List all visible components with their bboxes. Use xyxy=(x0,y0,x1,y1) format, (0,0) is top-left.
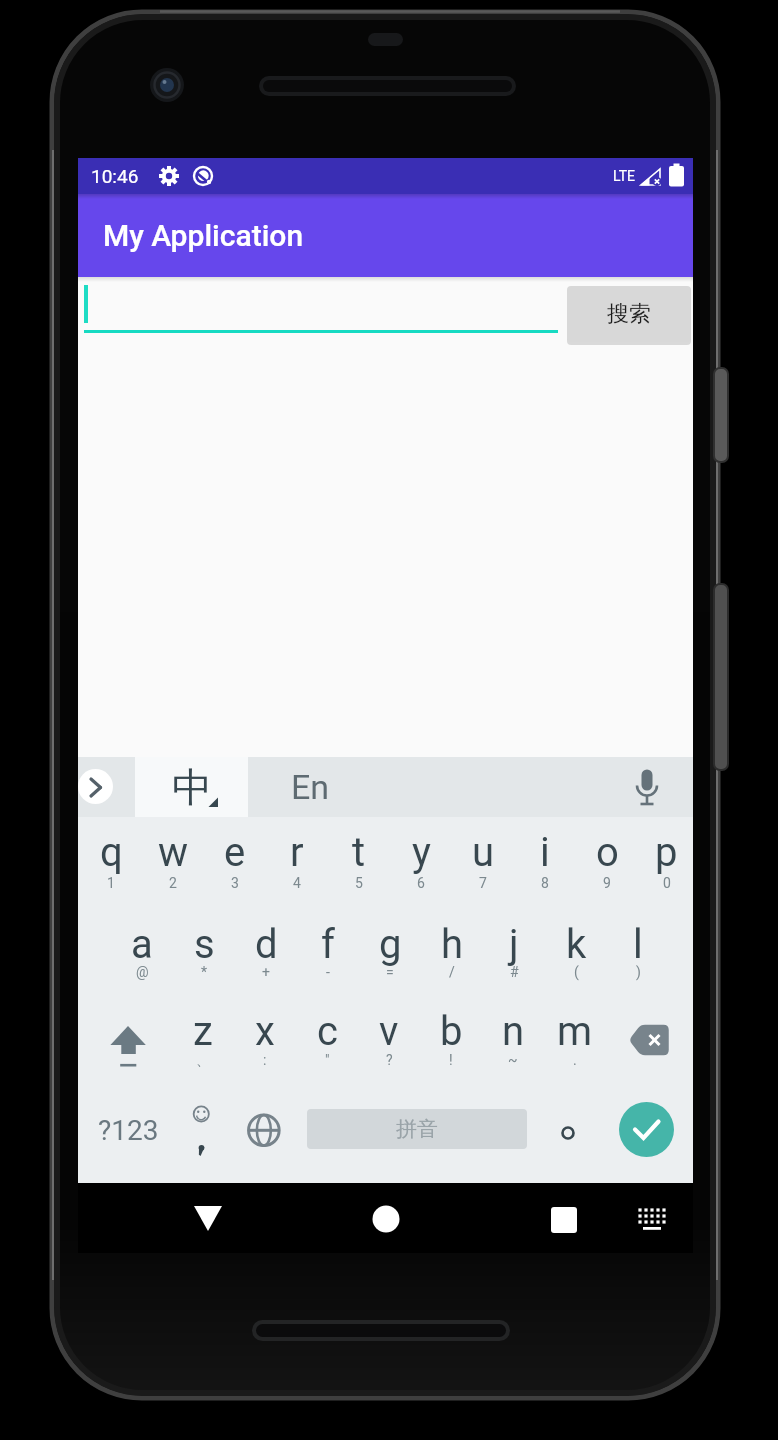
button[interactable]: d xyxy=(235,909,297,1001)
button[interactable]: z xyxy=(172,1000,234,1092)
button[interactable] xyxy=(234,1092,296,1184)
staticText: 6 xyxy=(417,875,425,891)
button[interactable] xyxy=(606,1000,695,1092)
staticText: ~ xyxy=(508,1052,518,1068)
button[interactable]: i xyxy=(514,817,576,909)
staticText: h xyxy=(441,921,464,968)
staticText: r xyxy=(290,829,304,876)
staticText: z xyxy=(193,1008,213,1055)
staticText: n xyxy=(502,1008,525,1055)
button[interactable]: f xyxy=(297,909,359,1001)
button[interactable]: x xyxy=(234,1000,296,1092)
staticText: # xyxy=(510,964,519,980)
staticText: 、 xyxy=(196,1052,210,1070)
button[interactable]: 中 xyxy=(135,757,248,817)
button[interactable]: j xyxy=(483,909,545,1001)
button[interactable]: q xyxy=(80,817,142,909)
button[interactable] xyxy=(633,766,661,810)
staticText: ! xyxy=(449,1052,453,1068)
button[interactable]: k xyxy=(545,909,607,1001)
staticText: @ xyxy=(136,964,149,980)
button[interactable]: p xyxy=(638,817,695,909)
staticText: s xyxy=(194,921,215,968)
button[interactable]: h xyxy=(421,909,483,1001)
button[interactable]: e xyxy=(204,817,266,909)
staticText: 0 xyxy=(663,875,671,891)
staticText: En xyxy=(291,767,330,807)
button[interactable] xyxy=(637,1207,667,1233)
staticText: o xyxy=(596,829,619,876)
staticText: 5 xyxy=(355,875,363,891)
button[interactable] xyxy=(371,1204,401,1234)
button[interactable]: t xyxy=(328,817,390,909)
staticText: b xyxy=(440,1008,463,1055)
button[interactable] xyxy=(172,1092,234,1184)
button[interactable] xyxy=(78,769,113,804)
staticText: 7 xyxy=(479,875,487,891)
staticText: 4 xyxy=(293,875,301,891)
button[interactable] xyxy=(194,1206,222,1232)
staticText: 10:46 xyxy=(91,165,139,187)
staticText: / xyxy=(449,964,455,980)
staticText: i xyxy=(540,829,550,876)
staticText: a xyxy=(131,921,153,968)
button[interactable]: u xyxy=(452,817,514,909)
staticText: 8 xyxy=(541,875,549,891)
staticText: p xyxy=(655,829,678,876)
button[interactable]: m xyxy=(544,1000,606,1092)
staticText: x xyxy=(255,1008,275,1055)
staticText: * xyxy=(201,964,208,980)
button[interactable]: 搜索 xyxy=(567,286,691,342)
staticText: ? xyxy=(386,1052,393,1068)
button[interactable]: g xyxy=(359,909,421,1001)
staticText: 3 xyxy=(231,875,239,891)
button[interactable] xyxy=(604,1092,695,1184)
staticText: My Application xyxy=(103,218,304,253)
staticText: k xyxy=(566,921,587,968)
staticText: : xyxy=(263,1052,267,1068)
staticText: ( xyxy=(574,964,579,980)
button[interactable]: a xyxy=(111,909,173,1001)
staticText: LTE xyxy=(613,168,635,184)
staticText: ) xyxy=(636,964,641,980)
staticText: j xyxy=(509,921,519,968)
staticText: u xyxy=(472,829,495,876)
staticText: 2 xyxy=(169,875,177,891)
staticText: 拼音 xyxy=(396,1116,438,1142)
staticText: 1 xyxy=(107,875,115,891)
button[interactable]: r xyxy=(266,817,328,909)
staticText: q xyxy=(100,829,123,876)
staticText: = xyxy=(386,964,394,980)
staticText: c xyxy=(317,1008,338,1055)
staticText: - xyxy=(326,964,330,980)
button[interactable]: l xyxy=(607,909,669,1001)
staticText: ?123 xyxy=(98,1114,159,1147)
button[interactable] xyxy=(551,1207,577,1233)
staticText: g xyxy=(379,921,402,968)
staticText: 搜索 xyxy=(607,300,651,328)
staticText: w xyxy=(158,829,189,876)
staticText: + xyxy=(262,964,270,980)
staticText: v xyxy=(379,1008,399,1055)
button[interactable]: w xyxy=(142,817,204,909)
button[interactable]: En xyxy=(248,757,372,817)
button[interactable]: c xyxy=(296,1000,358,1092)
staticText: 中 xyxy=(172,762,212,812)
staticText: " xyxy=(325,1052,330,1068)
button[interactable] xyxy=(84,277,558,339)
button[interactable]: 拼音 xyxy=(296,1092,542,1184)
button[interactable]: y xyxy=(390,817,452,909)
button[interactable]: n xyxy=(482,1000,544,1092)
button[interactable]: s xyxy=(173,909,235,1001)
button[interactable]: ?123 xyxy=(80,1092,172,1184)
button[interactable]: v xyxy=(358,1000,420,1092)
staticText: y xyxy=(412,829,431,876)
button[interactable] xyxy=(80,1000,172,1092)
button[interactable]: o xyxy=(576,817,638,909)
staticText: 9 xyxy=(603,875,611,891)
button[interactable]: b xyxy=(420,1000,482,1092)
staticText: f xyxy=(321,921,335,968)
staticText: . xyxy=(573,1052,577,1068)
button[interactable] xyxy=(542,1092,604,1184)
staticText: m xyxy=(557,1008,593,1055)
